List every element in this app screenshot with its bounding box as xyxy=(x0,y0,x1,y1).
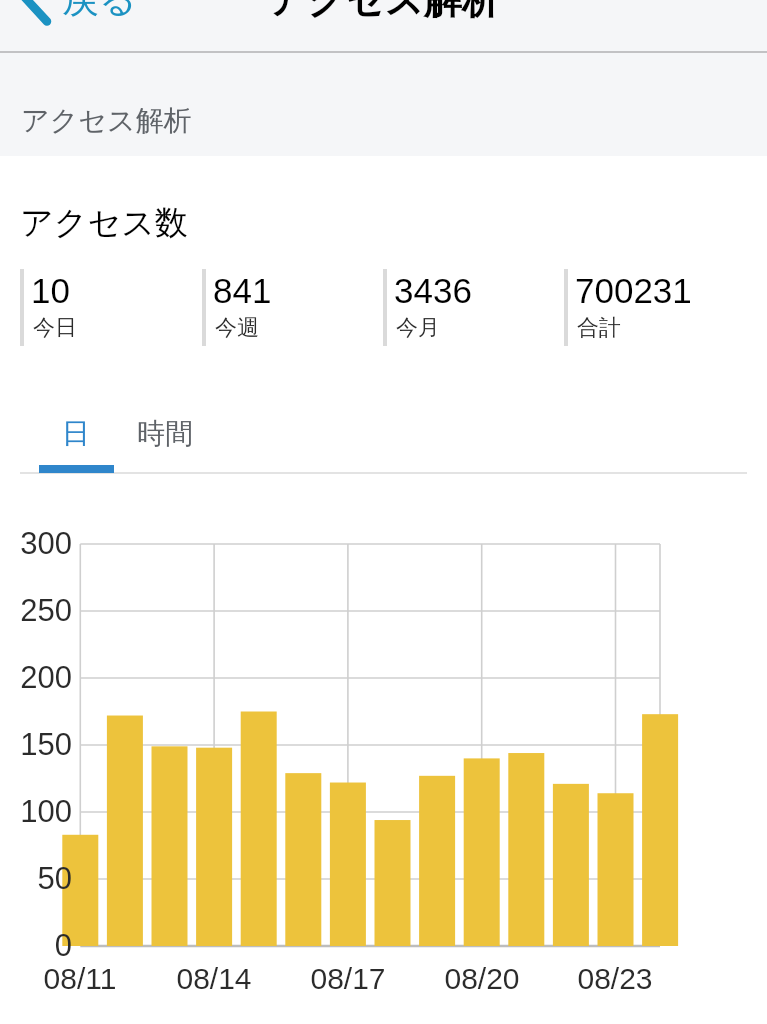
staticText: 時間 xyxy=(137,416,193,451)
staticText: アクセス数 xyxy=(20,202,189,244)
staticText: 841 xyxy=(213,271,272,310)
staticText: アクセス解析 xyxy=(21,103,192,138)
staticText: 合計 xyxy=(577,314,621,342)
staticText: 08/23 xyxy=(545,962,685,996)
staticText: 0 xyxy=(8,928,72,963)
staticText: アクセス解析 xyxy=(268,0,500,24)
button[interactable]: 日 xyxy=(38,405,114,473)
staticText: 50 xyxy=(8,861,72,896)
staticText: 10 xyxy=(31,271,70,310)
staticText: 250 xyxy=(8,593,72,628)
button[interactable]: 3436 xyxy=(383,269,564,346)
staticText: 08/11 xyxy=(10,962,150,996)
button[interactable]: 戻る xyxy=(0,0,145,31)
staticText: 今週 xyxy=(215,314,259,342)
staticText: 200 xyxy=(8,660,72,695)
staticText: 戻る xyxy=(62,0,137,23)
staticText: 08/17 xyxy=(278,962,418,996)
staticText: 700231 xyxy=(575,271,692,310)
staticText: 08/14 xyxy=(144,962,284,996)
staticText: 100 xyxy=(8,794,72,829)
button[interactable]: 時間 xyxy=(120,405,210,473)
staticText: 3436 xyxy=(394,271,472,310)
staticText: 今日 xyxy=(33,314,77,342)
staticText: 150 xyxy=(8,727,72,762)
button[interactable]: 10 xyxy=(20,269,201,346)
staticText: 300 xyxy=(8,526,72,561)
button[interactable]: 700231 xyxy=(564,269,745,346)
button[interactable]: 841 xyxy=(202,269,383,346)
staticText: 今月 xyxy=(396,314,440,342)
staticText: 日 xyxy=(62,416,90,451)
staticText: 08/20 xyxy=(412,962,552,996)
